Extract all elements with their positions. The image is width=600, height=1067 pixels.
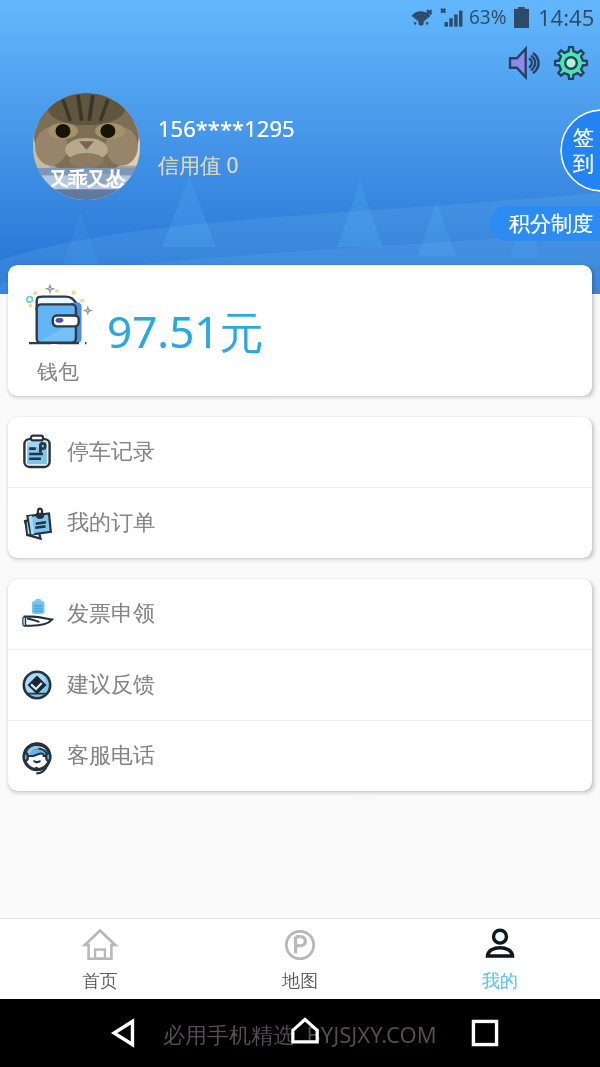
button[interactable]: Home xyxy=(289,1015,321,1047)
button[interactable]: Recents xyxy=(468,1016,502,1050)
staticText: 积分制度 xyxy=(509,211,593,237)
staticText: 地图 xyxy=(282,970,318,993)
staticText: 信用值 0 xyxy=(158,151,239,180)
button[interactable]: 又乖又怂 xyxy=(33,93,140,200)
button[interactable]: 停车记录 xyxy=(8,417,592,487)
staticText: 63% xyxy=(469,4,507,30)
button[interactable]: 97.51元 xyxy=(8,265,592,396)
staticText: 发票申领 xyxy=(67,600,155,628)
button[interactable]: 积分制度 xyxy=(490,206,600,241)
staticText: 156****1295 xyxy=(158,113,295,143)
button[interactable]: 我的订单 xyxy=(8,488,592,558)
staticText: 首页 xyxy=(82,970,118,993)
staticText: 建议反馈 xyxy=(67,671,155,699)
staticText: 签 到 xyxy=(573,125,594,177)
button[interactable]: 地图 xyxy=(200,919,400,999)
button[interactable]: Back xyxy=(108,1016,142,1050)
button[interactable]: 客服电话 xyxy=(8,721,592,791)
button[interactable]: Settings xyxy=(548,40,594,86)
button[interactable]: 首页 xyxy=(0,919,200,999)
button[interactable]: 签 到 xyxy=(560,109,600,192)
staticText: 14:45 xyxy=(538,2,595,32)
staticText: 又乖又怂 xyxy=(49,168,125,192)
button[interactable]: 我的 xyxy=(400,919,600,999)
staticText: 客服电话 xyxy=(67,742,155,770)
staticText: 钱包 xyxy=(37,359,79,385)
staticText: 停车记录 xyxy=(67,438,155,466)
staticText: 我的订单 xyxy=(67,509,155,537)
staticText: 必用手机精选 BYJSJXY.COM xyxy=(163,1019,437,1049)
staticText: 我的 xyxy=(482,970,518,993)
staticText: 97.51元 xyxy=(107,301,264,361)
button[interactable]: Sound xyxy=(502,40,548,86)
button[interactable]: 发票申领 xyxy=(8,579,592,649)
button[interactable]: 建议反馈 xyxy=(8,650,592,720)
